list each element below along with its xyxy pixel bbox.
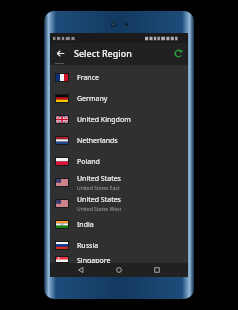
staticText: Germany <box>77 94 108 104</box>
staticText: United Kingdom <box>77 115 131 125</box>
staticText: Singapore <box>77 256 111 263</box>
staticText: United States West <box>77 206 122 213</box>
staticText: United States <box>77 174 121 184</box>
staticText: United States East <box>77 185 120 192</box>
staticText: Poland <box>77 157 100 167</box>
button[interactable]: Poland <box>50 151 188 172</box>
button[interactable]: Back <box>50 43 70 63</box>
button[interactable]: France <box>50 67 188 88</box>
staticText: United States <box>77 195 121 205</box>
button[interactable]: Singapore <box>50 256 188 263</box>
button[interactable]: Netherlands <box>50 130 188 151</box>
button[interactable]: Home <box>112 263 126 277</box>
button[interactable]: Refresh <box>168 43 188 63</box>
button[interactable]: Back <box>74 263 88 277</box>
button[interactable]: United States <box>50 193 188 214</box>
staticText: France <box>77 73 99 83</box>
button[interactable]: Russia <box>50 235 188 256</box>
staticText: India <box>77 220 94 230</box>
button[interactable]: United Kingdom <box>50 109 188 130</box>
button[interactable]: Recent apps <box>150 263 164 277</box>
staticText: Russia <box>77 241 99 251</box>
button[interactable]: Germany <box>50 88 188 109</box>
button[interactable]: United States <box>50 172 188 193</box>
button[interactable]: India <box>50 214 188 235</box>
staticText: Select Region <box>74 47 132 59</box>
staticText: Netherlands <box>77 136 118 146</box>
